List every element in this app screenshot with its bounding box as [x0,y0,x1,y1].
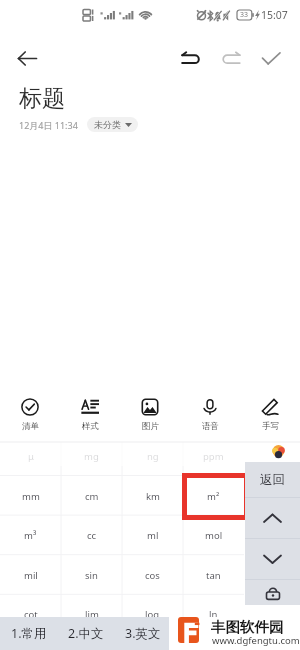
staticText: 1.常用 [11,625,47,642]
staticText: sin [85,569,98,582]
staticText: 返回 [260,472,285,488]
staticText: μ [28,450,34,463]
button[interactable]: Undo [174,43,206,73]
button[interactable]: Lock [245,580,300,605]
staticText: mm [22,490,40,503]
button[interactable]: ng [122,436,183,476]
staticText: 标题 [19,84,65,113]
button[interactable]: tan [183,555,244,595]
button[interactable]: Scroll up [245,498,300,538]
button[interactable]: km [122,476,183,516]
staticText: 12月4日 11:34 [19,119,78,131]
button[interactable]: 语音 [180,397,240,437]
staticText: www.dgfengtu.com [212,634,300,647]
staticText: cc [87,529,97,542]
staticText: mil [24,569,38,582]
staticText: 未分类 [94,119,121,130]
button[interactable]: Back [11,42,43,74]
staticText: 33 [240,10,249,20]
staticText: 2.中文 [68,625,104,642]
staticText: 样式 [82,421,99,432]
staticText: m² [207,490,220,503]
button[interactable]: m² [183,476,244,516]
button[interactable]: 未分类 [87,117,138,132]
staticText: cos [145,569,160,582]
button[interactable]: sin [61,555,122,595]
button[interactable]: 图片 [120,397,180,437]
staticText: mol [205,529,223,542]
button[interactable]: μ [0,436,61,476]
staticText: log [145,608,160,621]
button[interactable]: 2.中文 [57,617,114,650]
staticText: lim [85,608,99,621]
button[interactable]: Scroll down [245,539,300,579]
staticText: 3.英文 [125,625,161,642]
button[interactable]: log [122,594,183,634]
staticText: ln [209,608,218,621]
staticText: 15:07 [261,8,288,22]
staticText: tan [206,569,221,582]
staticText: ppm [203,450,224,463]
button[interactable]: 3.英文 [114,617,171,650]
button[interactable]: 返回 [245,462,300,497]
button[interactable]: lim [61,594,122,634]
button[interactable]: mil [0,555,61,595]
button[interactable]: ppm [183,436,244,476]
staticText: 清单 [22,421,39,432]
button[interactable]: cm [61,476,122,516]
button[interactable]: Redo [215,43,247,73]
button[interactable]: ml [122,515,183,555]
staticText: cm [85,490,99,503]
staticText: ml [147,529,159,542]
button[interactable]: mm [0,476,61,516]
button[interactable]: m³ [0,515,61,555]
staticText: ng [147,450,159,463]
staticText: km [146,490,160,503]
button[interactable]: 手写 [240,397,300,437]
staticText: m³ [24,529,37,542]
button[interactable]: mol [183,515,244,555]
staticText: 图片 [142,421,159,432]
button[interactable]: ln [183,594,244,634]
button[interactable]: mg [61,436,122,476]
button[interactable]: Done [255,43,287,73]
staticText: cot [24,608,38,621]
staticText: 丰图软件园 [211,618,284,636]
staticText: 语音 [202,421,219,432]
button[interactable]: 清单 [0,397,60,437]
staticText: 手写 [262,421,279,432]
button[interactable]: cos [122,555,183,595]
button[interactable]: 1.常用 [0,617,57,650]
button[interactable]: 样式 [60,397,120,437]
staticText: mg [84,450,99,463]
button[interactable]: cot [0,594,61,634]
button[interactable]: cc [61,515,122,555]
